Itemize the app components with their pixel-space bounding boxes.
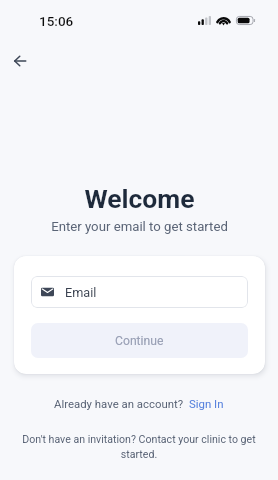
button[interactable]: Email [31,276,248,308]
staticText: Already have an account? [54,397,189,410]
staticText: Continue [115,334,164,348]
staticText: Enter your email to get started [51,219,228,234]
staticText: Email [65,285,97,300]
staticText: 15:06 [39,13,74,29]
button[interactable]: Sign In [189,397,224,410]
button[interactable]: Continue [31,323,248,358]
button[interactable]: Back [7,48,33,74]
staticText: Sign In [189,397,224,410]
staticText: Welcome [84,183,195,214]
staticText: Don't have an invitation? Contact your c… [12,433,266,460]
